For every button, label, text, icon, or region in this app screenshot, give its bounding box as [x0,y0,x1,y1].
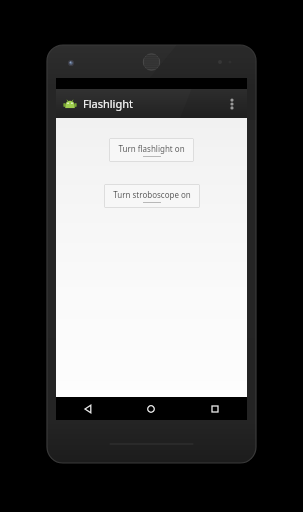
staticText: Flashlight [83,96,133,111]
button[interactable]: Turn flashlight on [109,138,194,162]
button[interactable]: Home [119,397,183,420]
staticText: Turn stroboscope on [113,189,191,200]
staticText: Turn flashlight on [118,143,185,154]
button[interactable]: Back [56,397,119,420]
button[interactable]: More options [221,89,243,118]
button[interactable]: Recent apps [183,397,247,420]
button[interactable]: Turn stroboscope on [104,184,200,208]
